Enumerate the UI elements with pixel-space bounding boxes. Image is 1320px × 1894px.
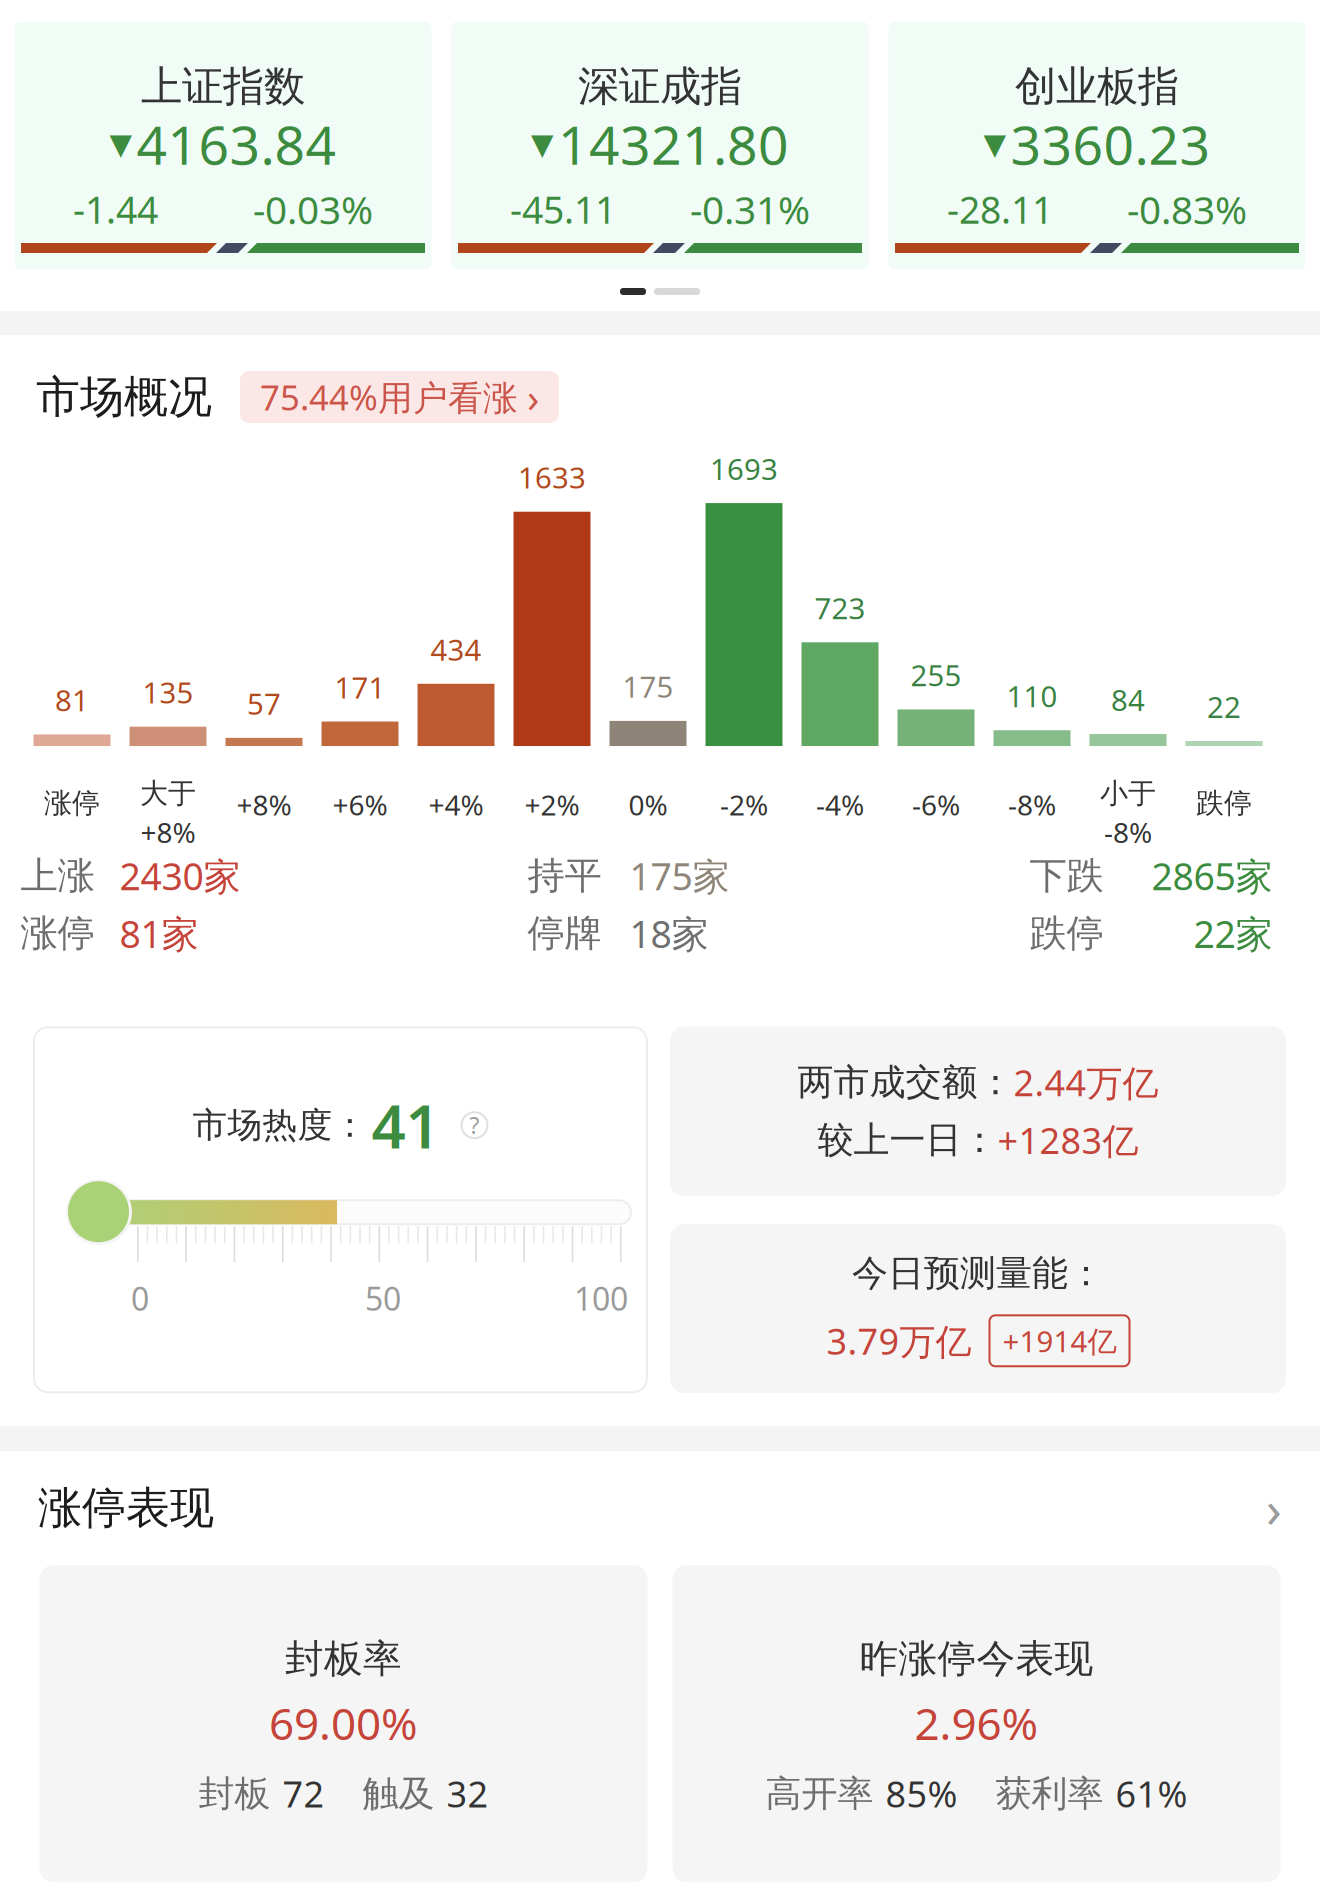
staticText: 1693	[710, 449, 778, 488]
staticText: ▼	[531, 127, 554, 161]
staticText: -0.31%	[690, 184, 810, 235]
staticText: 获利率	[995, 1771, 1103, 1816]
button[interactable]: 创业板指	[888, 22, 1305, 269]
button[interactable]: 深证成指	[451, 22, 868, 269]
staticText: 75.44%用户看涨	[260, 374, 518, 420]
staticText: 175	[622, 667, 673, 706]
staticText: 触及	[362, 1771, 434, 1816]
staticText: 57	[247, 684, 281, 723]
staticText: 0	[131, 1277, 149, 1320]
staticText: 小于	[1100, 776, 1156, 811]
staticText: 72	[282, 1770, 324, 1817]
staticText: 61%	[1115, 1770, 1187, 1817]
staticText: +2%	[524, 786, 579, 823]
staticText: -0.03%	[253, 184, 373, 235]
staticText: 1633	[518, 458, 586, 497]
staticText: 上证指数	[141, 61, 305, 112]
staticText: ▼	[109, 127, 132, 161]
staticText: 较上一日：	[817, 1118, 997, 1162]
staticText: 市场热度：	[192, 1104, 367, 1146]
staticText: 涨停表现	[38, 1481, 214, 1535]
staticText: 市场概况	[36, 370, 212, 424]
staticText: 14321.80	[558, 109, 789, 180]
staticText: 跌停	[1196, 786, 1252, 820]
staticText: -45.11	[510, 184, 616, 234]
staticText: +4%	[428, 786, 483, 823]
staticText: 135	[142, 673, 193, 712]
staticText: 上涨	[20, 853, 94, 899]
staticText: 持平	[527, 853, 601, 899]
staticText: 4163.84	[136, 109, 336, 180]
staticText: +8%	[140, 814, 195, 851]
staticText: 2865家	[1151, 851, 1272, 901]
staticText: 今日预测量能：	[852, 1251, 1104, 1295]
staticText: 22家	[1193, 909, 1272, 958]
staticText: 41	[371, 1085, 439, 1165]
staticText: ›	[527, 370, 539, 424]
staticText: 69.00%	[269, 1694, 418, 1752]
staticText: 84	[1111, 680, 1145, 719]
staticText: 昨涨停今表现	[859, 1635, 1093, 1683]
staticText: -6%	[912, 786, 960, 823]
staticText: 255	[910, 655, 961, 694]
staticText: 大于	[140, 776, 196, 811]
staticText: 3.79万亿	[826, 1317, 971, 1365]
staticText: 85%	[885, 1770, 957, 1817]
staticText: -28.11	[947, 184, 1053, 234]
button[interactable]: 上证指数	[14, 22, 431, 269]
staticText: 3360.23	[1010, 109, 1210, 180]
staticText: 深证成指	[578, 61, 742, 112]
staticText: 封板率	[285, 1635, 402, 1683]
staticText: 涨停	[20, 910, 94, 956]
staticText: 110	[1006, 676, 1057, 715]
staticText: 81家	[119, 909, 198, 958]
staticText: 创业板指	[1015, 61, 1179, 112]
staticText: 81	[55, 680, 89, 719]
staticText: 50	[365, 1277, 401, 1320]
staticText: 两市成交额：	[797, 1060, 1013, 1104]
staticText: 32	[446, 1770, 488, 1817]
staticText: ?	[469, 1110, 479, 1140]
staticText: -4%	[816, 786, 864, 823]
staticText: 2.44万亿	[1013, 1058, 1158, 1106]
staticText: 2.96%	[914, 1694, 1038, 1752]
staticText: +8%	[236, 786, 291, 823]
staticText: 封板	[198, 1771, 270, 1816]
staticText: 22	[1207, 687, 1241, 726]
staticText: 下跌	[1029, 853, 1103, 899]
staticText: -0.83%	[1127, 184, 1247, 235]
staticText: ›	[1266, 1475, 1282, 1542]
button[interactable]: 75.44%用户看涨	[240, 371, 559, 423]
staticText: 2430家	[119, 851, 240, 901]
staticText: 175家	[629, 851, 729, 901]
staticText: 434	[430, 630, 481, 669]
staticText: -8%	[1008, 786, 1056, 823]
staticText: 停牌	[527, 910, 601, 956]
staticText: 171	[334, 668, 385, 707]
staticText: 涨停	[44, 786, 100, 820]
staticText: 18家	[629, 909, 708, 958]
staticText: +1914亿	[1002, 1321, 1116, 1360]
staticText: +1283亿	[997, 1116, 1138, 1164]
staticText: -2%	[720, 786, 768, 823]
staticText: -8%	[1104, 814, 1152, 851]
staticText: -1.44	[73, 184, 158, 234]
staticText: ▼	[983, 127, 1006, 161]
staticText: 跌停	[1029, 910, 1103, 956]
button[interactable]: 涨停表现	[0, 1451, 1320, 1565]
staticText: 高开率	[765, 1771, 873, 1816]
staticText: 0%	[628, 786, 667, 823]
staticText: 100	[574, 1277, 628, 1320]
staticText: 723	[814, 588, 865, 627]
staticText: +6%	[332, 786, 387, 823]
